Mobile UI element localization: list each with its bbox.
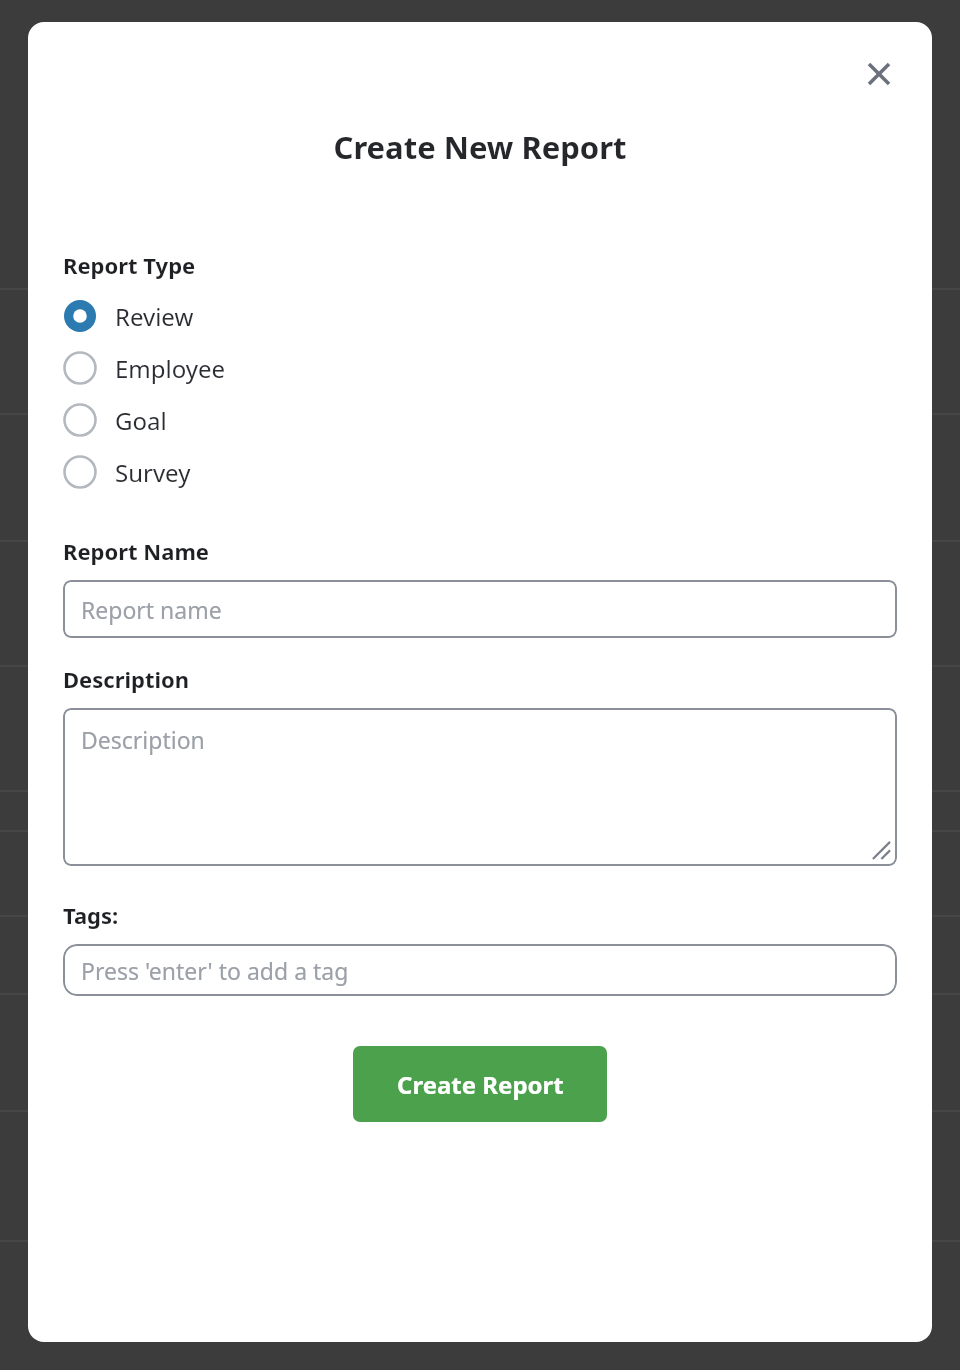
button[interactable]: Report name <box>63 580 897 638</box>
staticText: Description <box>63 664 190 694</box>
staticText: Review <box>115 300 194 333</box>
staticText: Report name <box>81 594 222 625</box>
staticText: Create Report <box>397 1068 564 1101</box>
staticText: Report Type <box>63 250 196 280</box>
staticText: Press 'enter' to add a tag <box>81 955 349 986</box>
button[interactable]: Close <box>856 51 902 97</box>
staticText: Employee <box>115 352 226 385</box>
button[interactable]: Create Report <box>353 1046 607 1122</box>
staticText: Report Name <box>63 536 209 566</box>
button[interactable]: Goal <box>63 394 897 446</box>
staticText: Description <box>81 724 205 755</box>
button[interactable]: Description <box>63 708 897 866</box>
button[interactable]: Employee <box>63 342 897 394</box>
button[interactable]: Review <box>63 290 897 342</box>
staticText: Goal <box>115 404 167 437</box>
button[interactable]: Survey <box>63 446 897 498</box>
button[interactable]: Press 'enter' to add a tag <box>63 944 897 996</box>
staticText: Survey <box>115 456 191 489</box>
staticText: Create New Report <box>28 126 932 168</box>
staticText: Tags: <box>63 900 119 930</box>
